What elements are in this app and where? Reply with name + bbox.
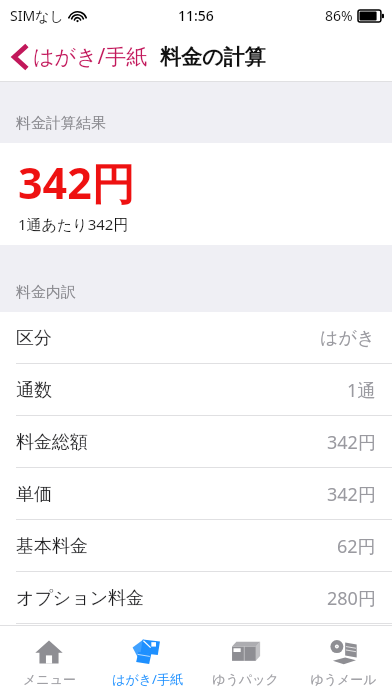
button[interactable]: 戻る [8,38,152,75]
other: 戻る [12,44,28,70]
button[interactable]: 区分 [0,312,392,364]
staticText: 料金の計算 [160,44,266,70]
staticText: はがき [320,327,376,350]
staticText: 単価 [16,483,52,506]
staticText: はがき/手紙 [33,42,148,71]
button[interactable]: ゆうメール [294,626,392,696]
staticText: 料金内訳 [16,283,76,302]
button[interactable]: 料金総額 [0,416,392,468]
staticText: メニュー [23,671,76,687]
staticText: 料金計算結果 [16,114,106,133]
staticText: 280円 [327,586,376,611]
staticText: 342円 [327,482,376,507]
staticText: ゆうパック [212,671,279,687]
button[interactable]: メニュー [0,626,98,696]
staticText: 通数 [16,379,52,402]
staticText: はがき/手紙 [112,670,183,688]
button[interactable]: 単価 [0,468,392,520]
staticText: SIMなし [10,6,64,25]
button[interactable]: 基本料金 [0,520,392,572]
staticText: 86% [325,6,353,25]
staticText: 342円 [18,153,135,212]
staticText: 基本料金 [16,535,88,558]
staticText: 料金総額 [16,431,88,454]
button[interactable]: ゆうパック [196,626,294,696]
staticText: 342円 [327,430,376,455]
button[interactable]: オプション料金 [0,572,392,624]
staticText: ゆうメール [310,671,377,687]
staticText: 1通あたり342円 [18,214,129,234]
staticText: オプション料金 [16,587,145,610]
staticText: 1通 [347,378,376,403]
staticText: 62円 [337,534,376,559]
button[interactable]: はがき/手紙 [98,626,196,696]
staticText: 区分 [16,327,52,350]
staticText: 11:56 [178,6,214,25]
button[interactable]: 通数 [0,364,392,416]
